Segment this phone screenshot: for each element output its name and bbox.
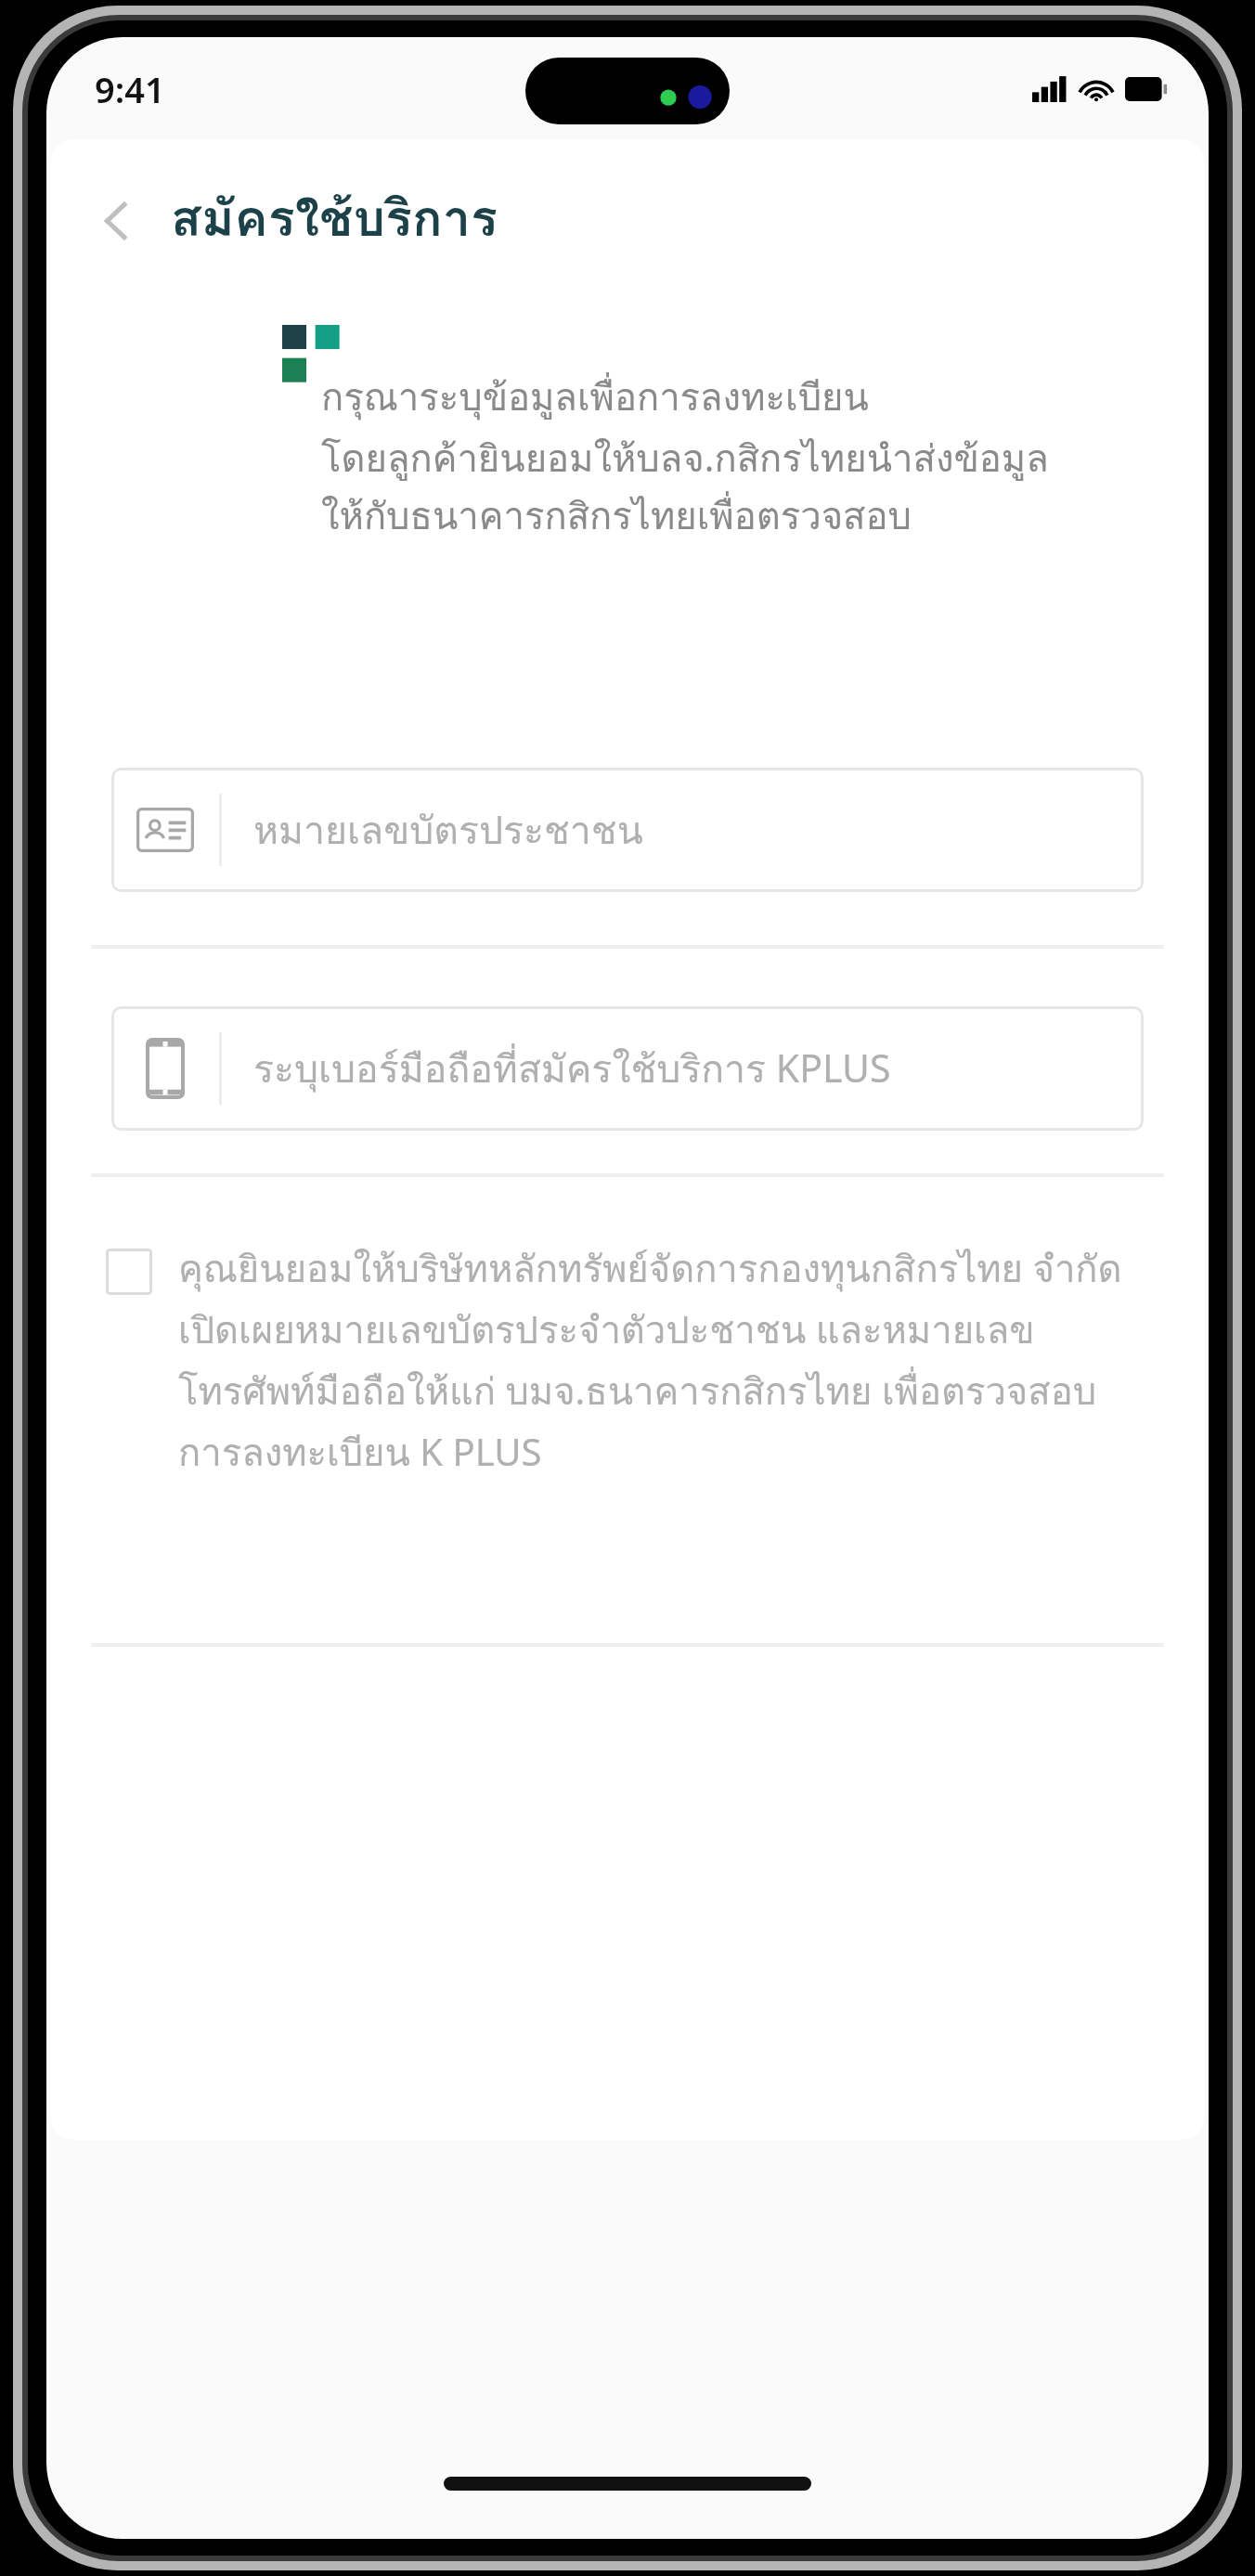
button[interactable]: ระบุเบอร์มือถือที่สมัครใช้บริการ KPLUS bbox=[111, 1006, 1144, 1131]
button[interactable]: คุณยินยอมให้บริษัทหลักทรัพย์จัดการกองทุน… bbox=[106, 1239, 1151, 1482]
button[interactable]: Back bbox=[74, 178, 160, 264]
staticText: กรุณาระบุข้อมูลเพื่อการลงทะเบียน โดยลูกค… bbox=[321, 368, 1049, 545]
staticText: 9:41 bbox=[95, 65, 165, 113]
staticText: ระบุเบอร์มือถือที่สมัครใช้บริการ KPLUS bbox=[253, 1039, 891, 1099]
staticText: สมัครใช้บริการ bbox=[171, 178, 498, 258]
staticText: คุณยินยอมให้บริษัทหลักทรัพย์จัดการกองทุน… bbox=[178, 1239, 1151, 1482]
button[interactable]: หมายเลขบัตรประชาชน bbox=[111, 768, 1144, 892]
staticText: หมายเลขบัตรประชาชน bbox=[253, 800, 643, 861]
